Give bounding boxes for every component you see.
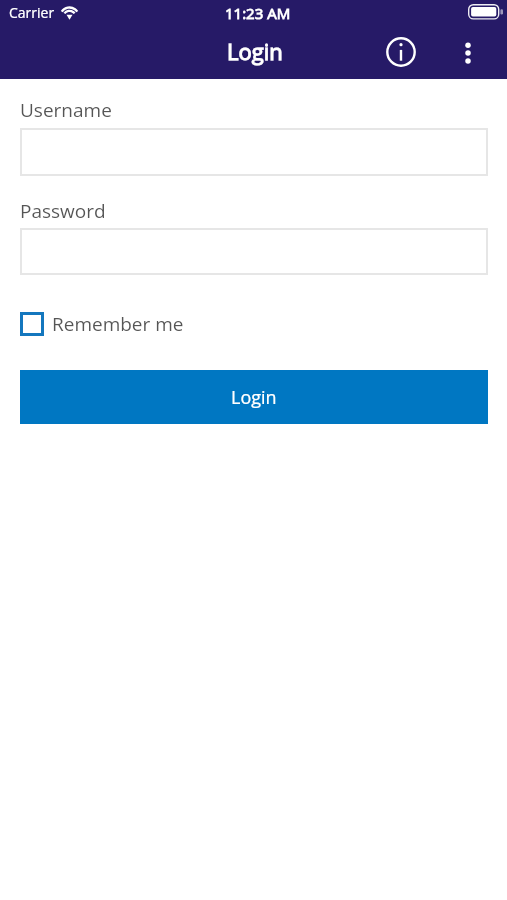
button[interactable]: Login (20, 370, 488, 424)
staticText: Login (227, 36, 283, 66)
staticText: Carrier (9, 3, 55, 22)
staticText: Password (20, 198, 106, 224)
button[interactable]: More options (444, 29, 492, 77)
staticText: 11:23 AM (225, 3, 291, 23)
button[interactable]: Password field (20, 228, 488, 275)
button[interactable]: Remember me (20, 311, 184, 337)
staticText: Login (231, 385, 277, 410)
button[interactable]: Username field (20, 128, 488, 176)
staticText: Remember me (52, 311, 184, 337)
staticText: Username (20, 97, 112, 123)
button[interactable]: Info (377, 28, 425, 76)
